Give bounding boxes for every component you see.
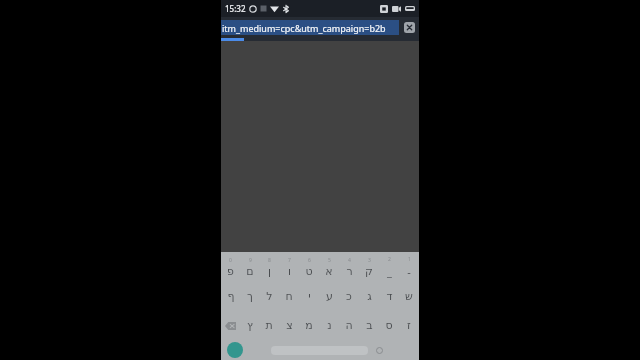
staticText: _ — [387, 264, 392, 279]
staticText: ת — [265, 319, 273, 332]
button[interactable]: 3 — [359, 252, 379, 282]
staticText: כ — [346, 290, 352, 303]
staticText: י — [308, 290, 311, 303]
staticText: ז — [407, 319, 411, 332]
staticText: ו — [288, 265, 291, 278]
staticText: ה — [345, 319, 353, 332]
staticText: ם — [246, 265, 254, 278]
staticText: ש — [405, 290, 413, 303]
staticText: - — [407, 264, 411, 279]
button[interactable]: ה — [339, 311, 359, 340]
button[interactable]: ץ — [240, 311, 259, 340]
button[interactable]: Clear text — [399, 17, 419, 38]
staticText: 1 — [408, 256, 411, 263]
button[interactable]: 0 — [221, 252, 240, 282]
staticText: ט — [305, 265, 313, 278]
staticText: ר — [346, 265, 353, 278]
staticText: נ — [327, 319, 332, 332]
staticText: itm_medium=cpc&utm_campaign=b2b — [222, 22, 386, 34]
button[interactable]: מ — [299, 311, 319, 340]
button[interactable]: 7 — [279, 252, 299, 282]
staticText: ד — [386, 290, 393, 303]
staticText: ן — [268, 265, 271, 278]
button[interactable]: כ — [339, 282, 359, 311]
staticText: 8 — [268, 257, 271, 264]
staticText: ך — [247, 290, 253, 303]
button[interactable]: י — [299, 282, 319, 311]
staticText: ח — [285, 290, 293, 303]
staticText: 5 — [328, 257, 331, 264]
staticText: 4 — [348, 257, 351, 264]
button[interactable]: ג — [359, 282, 379, 311]
staticText: 3 — [368, 257, 371, 264]
button[interactable]: ב — [359, 311, 379, 340]
button[interactable]: נ — [319, 311, 339, 340]
button[interactable]: ת — [259, 311, 279, 340]
button[interactable]: ס — [379, 311, 399, 340]
button[interactable]: ע — [319, 282, 339, 311]
button[interactable]: ש — [399, 282, 419, 311]
staticText: צ — [286, 319, 293, 332]
button[interactable]: ך — [240, 282, 259, 311]
staticText: ג — [367, 290, 372, 303]
staticText: מ — [305, 319, 313, 332]
staticText: ע — [326, 290, 333, 303]
staticText: ל — [266, 290, 273, 303]
button[interactable]: 6 — [299, 252, 319, 282]
button[interactable]: צ — [279, 311, 299, 340]
button[interactable]: itm_medium=cpc&utm_campaign=b2b — [221, 20, 399, 35]
button[interactable]: 1 — [399, 252, 419, 282]
staticText: ף — [227, 290, 235, 303]
button[interactable]: Comma — [368, 340, 390, 360]
staticText: 7 — [288, 257, 291, 264]
staticText: ץ — [247, 319, 253, 332]
button[interactable]: 4 — [339, 252, 359, 282]
staticText: ס — [385, 319, 393, 332]
button[interactable]: 8 — [259, 252, 279, 282]
staticText: א — [325, 265, 333, 278]
button[interactable]: ח — [279, 282, 299, 311]
staticText: 15:32 — [225, 3, 246, 14]
staticText: ק — [365, 265, 373, 278]
staticText: 9 — [249, 257, 252, 264]
staticText: 2 — [388, 256, 391, 263]
button[interactable]: ף — [221, 282, 240, 311]
staticText: פ — [227, 265, 234, 278]
button[interactable]: 5 — [319, 252, 339, 282]
staticText: ב — [366, 319, 373, 332]
button[interactable]: 9 — [240, 252, 259, 282]
button[interactable]: Enter — [221, 340, 249, 360]
staticText: 6 — [308, 257, 311, 264]
button[interactable]: Backspace — [221, 311, 240, 340]
button[interactable]: ד — [379, 282, 399, 311]
button[interactable]: ז — [399, 311, 419, 340]
button[interactable]: ל — [259, 282, 279, 311]
button[interactable]: 2 — [379, 252, 399, 282]
staticText: 0 — [229, 257, 232, 264]
